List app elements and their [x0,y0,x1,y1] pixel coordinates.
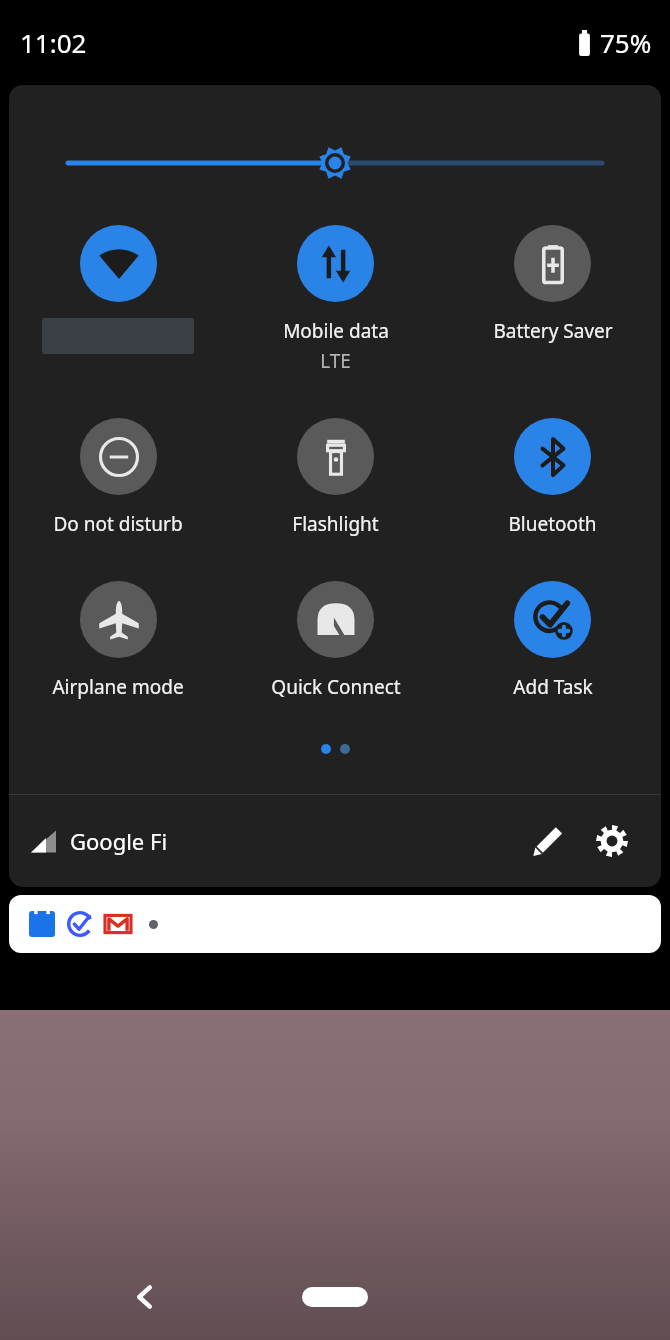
staticText: Google Fi [70,826,168,856]
button[interactable]: Back [118,1270,172,1324]
button[interactable]: Wi-Fi [9,225,227,354]
button[interactable]: Notifications [9,895,661,953]
button[interactable]: Quick Connect [227,581,444,700]
staticText: LTE [320,348,351,374]
staticText: Bluetooth [508,511,597,537]
button[interactable]: Settings [585,814,639,868]
button[interactable]: Add Task [444,581,661,700]
staticText: Mobile data [283,318,389,344]
staticText: Add Task [513,674,593,700]
button[interactable]: Mobile data [227,225,444,374]
staticText: Do not disturb [53,511,183,537]
staticText: Quick Connect [271,674,401,700]
button[interactable]: Battery Saver [444,225,661,344]
button[interactable]: Do not disturb [9,418,227,537]
staticText: 11:02 [20,25,87,60]
button[interactable]: Airplane mode [9,581,227,700]
button[interactable]: Edit [521,814,575,868]
staticText: Battery Saver [493,318,613,344]
button[interactable]: Home [293,1281,377,1313]
staticText: Flashlight [292,511,379,537]
button[interactable]: Bluetooth [444,418,661,537]
staticText: 75% [600,25,652,60]
button[interactable]: Flashlight [227,418,444,537]
staticText: Airplane mode [52,674,184,700]
